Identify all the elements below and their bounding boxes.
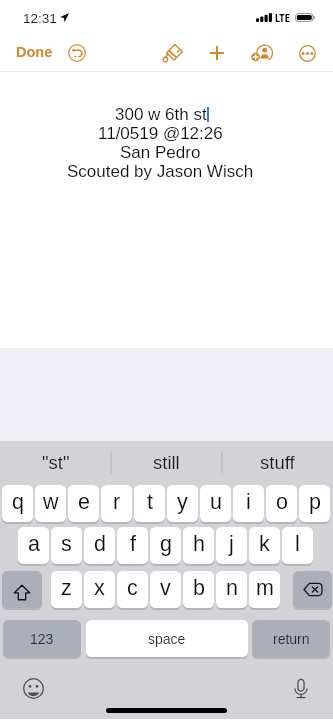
button[interactable]: More [296,42,318,64]
staticText: a [28,532,40,556]
staticText: u [210,490,222,514]
staticText: space [148,631,186,647]
staticText: still [153,452,180,473]
button[interactable]: space [86,620,248,657]
button[interactable]: s [51,527,82,564]
staticText: g [160,532,172,556]
button[interactable]: b [183,571,214,608]
staticText: Scouted by Jason Wisch [67,162,254,181]
button[interactable]: t [134,485,165,522]
staticText: w [43,490,59,514]
button[interactable]: k [249,527,280,564]
staticText: o [276,490,288,514]
button[interactable]: Add [206,42,228,64]
staticText: j [229,532,234,556]
button[interactable]: stuff [222,441,333,484]
button[interactable]: p [299,485,330,522]
button[interactable]: Numbers [3,620,81,657]
staticText: r [113,490,121,514]
button[interactable]: c [117,571,148,608]
button[interactable]: a [18,527,49,564]
staticText: San Pedro [120,143,201,162]
button[interactable]: q [2,485,33,522]
button[interactable]: v [150,571,181,608]
button[interactable]: w [35,485,66,522]
button[interactable]: i [233,485,264,522]
button[interactable]: Return [252,620,330,657]
button[interactable]: Backspace [293,571,332,608]
staticText: stuff [260,452,295,473]
staticText: h [193,532,205,556]
button[interactable]: still [111,441,222,484]
staticText: 11/0519 @12:26 [98,124,223,143]
staticText: t [147,490,153,514]
button[interactable]: z [51,571,82,608]
button[interactable]: Dictate [289,676,313,700]
button[interactable]: Undo [65,41,88,64]
staticText: y [177,490,188,514]
button[interactable]: Add people [250,41,274,65]
button[interactable]: y [167,485,198,522]
staticText: n [226,576,238,600]
button[interactable]: d [84,527,115,564]
staticText: z [61,576,72,600]
staticText: m [256,576,274,600]
button[interactable]: n [216,571,247,608]
button[interactable]: Markup [161,41,185,65]
staticText: q [12,490,24,514]
staticText: d [94,532,106,556]
staticText: p [309,490,321,514]
staticText: 300 w 6th st [115,105,207,124]
button[interactable]: Emoji [21,676,45,700]
button[interactable]: f [117,527,148,564]
staticText: l [295,532,300,556]
button[interactable]: x [84,571,115,608]
staticText: b [193,576,205,600]
button[interactable]: Done [16,44,53,60]
button[interactable]: "st" [0,441,111,484]
button[interactable]: h [183,527,214,564]
button[interactable]: e [68,485,99,522]
button[interactable]: m [249,571,280,608]
staticText: return [273,631,310,647]
staticText: v [160,576,171,600]
staticText: e [78,490,90,514]
staticText: "st" [42,452,70,473]
button[interactable]: l [282,527,313,564]
staticText: Done [16,44,53,60]
staticText: s [61,532,72,556]
staticText: k [259,532,270,556]
staticText: f [130,532,136,556]
staticText: c [127,576,138,600]
button[interactable]: u [200,485,231,522]
button[interactable]: o [266,485,297,522]
staticText: 123 [30,631,54,647]
button[interactable]: j [216,527,247,564]
staticText: LTE [275,12,290,24]
staticText: x [94,576,105,600]
staticText: i [246,490,251,514]
staticText: 12:31 [23,11,57,26]
button[interactable]: Shift [2,571,42,608]
button[interactable]: r [101,485,132,522]
button[interactable]: g [150,527,181,564]
